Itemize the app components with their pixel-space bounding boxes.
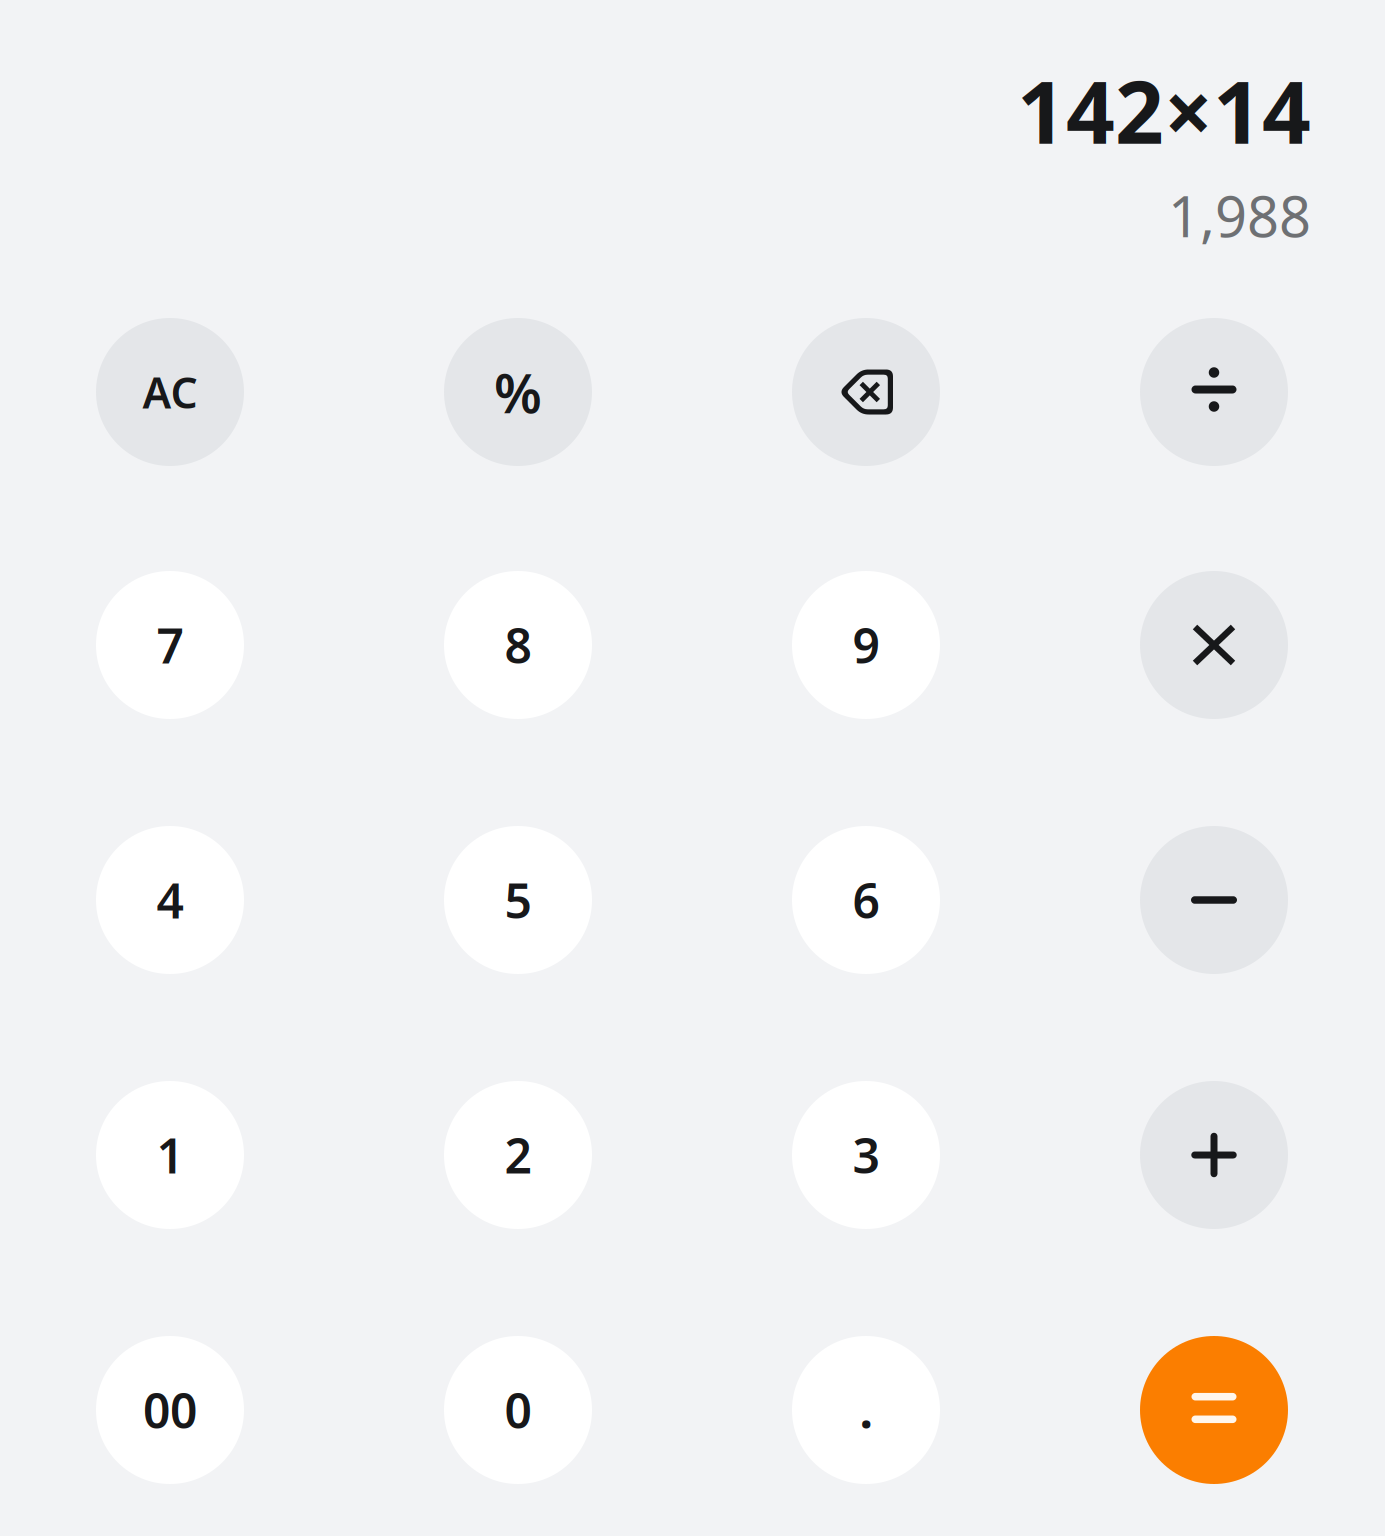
staticText: % bbox=[494, 356, 542, 428]
staticText: 5 bbox=[504, 868, 531, 932]
staticText: 1 bbox=[156, 1123, 183, 1187]
button[interactable]: 2 bbox=[444, 1081, 592, 1229]
staticText: 6 bbox=[852, 868, 879, 932]
button[interactable]: 9 bbox=[792, 571, 940, 719]
button[interactable]: 0 bbox=[444, 1336, 592, 1484]
button[interactable]: Delete bbox=[792, 318, 940, 466]
staticText: 3 bbox=[852, 1123, 879, 1187]
button[interactable]: 00 bbox=[96, 1336, 244, 1484]
button[interactable]: Multiply bbox=[1140, 571, 1288, 719]
button[interactable]: AC bbox=[96, 318, 244, 466]
staticText: 0 bbox=[504, 1378, 531, 1442]
staticText: 1,988 bbox=[1168, 178, 1311, 253]
button[interactable]: 8 bbox=[444, 571, 592, 719]
button[interactable]: 6 bbox=[792, 826, 940, 974]
staticText: 2 bbox=[504, 1123, 531, 1187]
staticText: 00 bbox=[143, 1378, 197, 1442]
button[interactable]: . bbox=[792, 1336, 940, 1484]
staticText: AC bbox=[142, 364, 197, 420]
button[interactable]: Divide bbox=[1140, 318, 1288, 466]
button[interactable]: 7 bbox=[96, 571, 244, 719]
staticText: 7 bbox=[156, 613, 183, 677]
staticText: . bbox=[859, 1378, 872, 1442]
staticText: 9 bbox=[852, 613, 879, 677]
button[interactable]: Equals bbox=[1140, 1336, 1288, 1484]
staticText: 8 bbox=[504, 613, 531, 677]
button[interactable]: 4 bbox=[96, 826, 244, 974]
button[interactable]: 1 bbox=[96, 1081, 244, 1229]
button[interactable]: Add bbox=[1140, 1081, 1288, 1229]
button[interactable]: 5 bbox=[444, 826, 592, 974]
staticText: 142×14 bbox=[1017, 54, 1311, 167]
button[interactable]: 3 bbox=[792, 1081, 940, 1229]
button[interactable]: % bbox=[444, 318, 592, 466]
button[interactable]: Subtract bbox=[1140, 826, 1288, 974]
staticText: 4 bbox=[156, 868, 183, 932]
